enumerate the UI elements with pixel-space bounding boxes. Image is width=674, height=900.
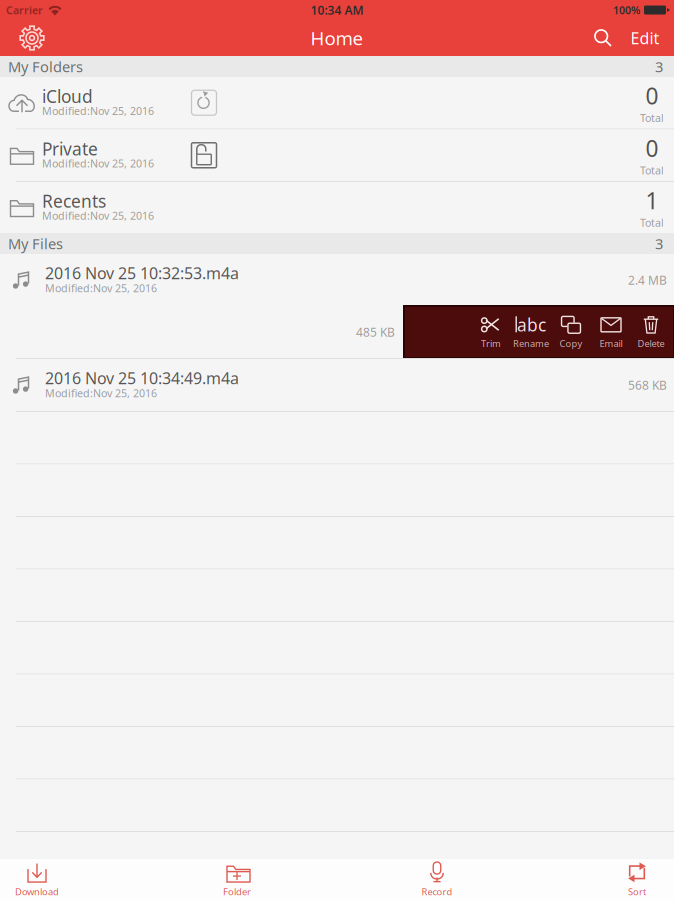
staticText: 2016 Nov 25 10:34:49.m4a <box>45 367 239 389</box>
staticText: Modified:Nov 25, 2016 <box>45 281 157 295</box>
staticText: Total <box>640 163 664 177</box>
staticText: 485 KB <box>356 324 395 340</box>
staticText: Modified:Nov 25, 2016 <box>45 386 157 400</box>
staticText: 3 <box>655 234 663 253</box>
button[interactable]: iCloud <box>0 77 674 128</box>
button[interactable]: 2016 Nov 25 10:34:49.m4a <box>0 359 674 411</box>
staticText: 10:34 AM <box>310 2 363 18</box>
staticText: Carrier <box>6 3 43 17</box>
staticText: Rename <box>513 337 549 350</box>
staticText: 0 <box>645 133 658 163</box>
staticText: Edit <box>630 27 659 49</box>
button[interactable]: Settings <box>10 21 54 55</box>
staticText: Record <box>421 886 452 898</box>
staticText: iCloud <box>42 85 93 108</box>
staticText: Copy <box>559 337 582 350</box>
staticText: 568 KB <box>628 377 667 393</box>
staticText: 3 <box>655 57 663 76</box>
button[interactable]: Search <box>583 21 623 55</box>
staticText: My Folders <box>8 57 83 76</box>
staticText: Modified:Nov 25, 2016 <box>42 156 154 170</box>
staticText: 0 <box>645 81 658 111</box>
staticText: Modified:Nov 25, 2016 <box>42 208 154 223</box>
button[interactable]: Copy <box>551 306 591 358</box>
staticText: Sort <box>628 886 646 898</box>
staticText: Trim <box>481 337 501 350</box>
button[interactable]: Trim <box>471 306 511 358</box>
button[interactable]: 2016 Nov 25 10:32:53.m4a <box>0 254 674 306</box>
staticText: Private <box>42 137 98 160</box>
staticText: Modified:Nov 25, 2016 <box>42 104 154 118</box>
button[interactable]: abc <box>511 306 551 358</box>
button[interactable]: Private <box>0 129 674 181</box>
staticText: Total <box>640 111 664 125</box>
button[interactable]: Email <box>591 306 631 358</box>
staticText: abc <box>517 313 546 336</box>
button[interactable]: Delete <box>631 306 671 358</box>
staticText: 2.4 MB <box>628 272 667 288</box>
button[interactable]: Folder <box>200 858 274 900</box>
button[interactable]: Edit <box>623 21 667 55</box>
staticText: Total <box>640 215 664 230</box>
button[interactable]: Recents <box>0 182 674 233</box>
staticText: 100% <box>613 3 640 17</box>
staticText: My Files <box>8 234 63 253</box>
staticText: Recents <box>42 189 106 212</box>
button[interactable]: Download <box>0 858 74 900</box>
button[interactable]: Sort <box>600 858 674 900</box>
staticText: Email <box>599 337 622 350</box>
staticText: 2016 Nov 25 10:32:53.m4a <box>45 262 239 284</box>
staticText: Home <box>310 26 363 50</box>
staticText: Folder <box>223 886 251 898</box>
staticText: 1 <box>645 185 658 215</box>
staticText: Download <box>15 886 59 898</box>
button[interactable]: Record <box>400 858 474 900</box>
staticText: Delete <box>637 337 664 350</box>
